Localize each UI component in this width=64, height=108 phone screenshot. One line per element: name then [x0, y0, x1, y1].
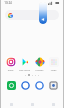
staticText: Insta — [4, 68, 17, 71]
button[interactable]: Volume — [39, 2, 47, 24]
button[interactable]: Camera — [47, 79, 59, 91]
staticText: Play Store — [18, 68, 31, 71]
button[interactable]: Recents — [49, 100, 57, 108]
button[interactable]: Phone — [5, 79, 17, 91]
staticText: Photos — [33, 68, 46, 71]
button[interactable]: Back — [7, 100, 15, 108]
button[interactable]: Google Search — [5, 10, 59, 20]
button[interactable]: Home — [28, 100, 36, 108]
button[interactable]: Browser — [33, 79, 45, 91]
staticText: Apps — [47, 68, 60, 71]
button[interactable]: Messages — [19, 79, 31, 91]
staticText: 10:24 — [4, 1, 12, 5]
button[interactable]: Photos — [33, 57, 46, 71]
button[interactable]: Apps — [47, 57, 60, 71]
button[interactable]: Play Store — [18, 57, 31, 71]
button[interactable]: Insta — [4, 57, 17, 71]
